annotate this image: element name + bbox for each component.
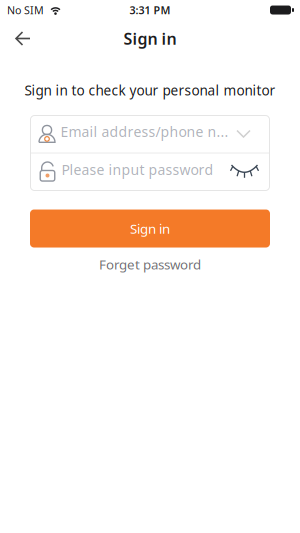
button[interactable]: Sign in [30,209,270,247]
staticText: Please input password [61,160,213,179]
staticText: Sign in to check your personal monitor [24,81,275,99]
staticText: No SIM [7,3,44,17]
button[interactable] [0,20,31,56]
staticText: Sign in [130,219,170,238]
staticText: Sign in [123,28,176,49]
staticText: Forget password [99,255,201,273]
staticText: Email address/phone n... [60,122,228,141]
staticText: 3:31 PM [129,3,170,17]
button[interactable]: Email address/phone n... [30,115,269,152]
button[interactable]: Please input password [30,153,269,190]
button[interactable]: Forget password [99,255,201,273]
